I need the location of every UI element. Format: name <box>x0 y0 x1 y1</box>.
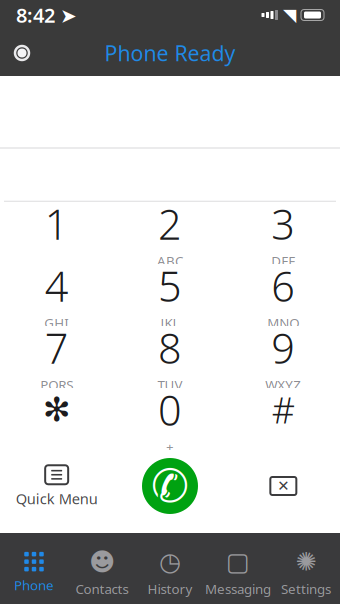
staticText: ✕ <box>277 478 289 494</box>
button[interactable]: ✺ <box>272 539 340 598</box>
staticText: 6 <box>271 258 295 313</box>
button[interactable]: Delete <box>227 450 340 522</box>
button[interactable]: 5 <box>113 264 227 326</box>
staticText: Settings <box>281 580 331 598</box>
button[interactable]: Signal status <box>4 38 40 68</box>
button[interactable]: 8 <box>113 326 227 388</box>
staticText: Messaging <box>205 580 271 598</box>
staticText: ▢ <box>226 547 250 576</box>
staticText: Phone Ready <box>104 39 235 67</box>
staticText: ✆ <box>151 460 189 512</box>
staticText: 9 <box>271 320 295 375</box>
staticText: PQRS <box>40 376 73 394</box>
staticText: ✻ <box>43 391 71 428</box>
staticText: Phone <box>14 576 54 594</box>
staticText: ◥ <box>283 5 296 25</box>
staticText: WXYZ <box>265 376 301 394</box>
staticText: ☻ <box>89 547 115 576</box>
button[interactable]: ◷ <box>136 539 204 598</box>
staticText: DEF <box>271 252 295 270</box>
button[interactable]: ☻ <box>68 539 136 598</box>
button[interactable]: 0 <box>113 388 227 450</box>
staticText: ABC <box>157 252 183 270</box>
staticText: JKL <box>160 314 179 332</box>
staticText: Quick Menu <box>16 489 98 508</box>
button[interactable]: Phone <box>0 543 68 594</box>
staticText: TUV <box>157 376 182 394</box>
button[interactable]: 2 <box>113 202 227 264</box>
staticText: 2 <box>158 196 182 251</box>
staticText: ✺ <box>295 547 316 576</box>
button[interactable]: ▢ <box>204 539 272 598</box>
button[interactable]: Quick Menu <box>0 450 113 522</box>
staticText: Contacts <box>75 580 128 598</box>
button[interactable]: 1 <box>0 202 113 264</box>
staticText: + <box>166 438 174 456</box>
staticText: 0 <box>158 382 182 437</box>
staticText: 1 <box>45 196 69 251</box>
button[interactable]: ✻ <box>0 388 113 450</box>
button[interactable]: 6 <box>227 264 340 326</box>
button[interactable]: 7 <box>0 326 113 388</box>
button[interactable]: 4 <box>0 264 113 326</box>
staticText: History <box>147 580 192 598</box>
button[interactable]: # <box>227 388 340 450</box>
staticText: # <box>272 386 295 433</box>
staticText: 8:42 ➤ <box>16 2 77 28</box>
staticText: 8 <box>158 320 182 375</box>
staticText: 3 <box>271 196 295 251</box>
staticText: GHI <box>44 314 69 332</box>
staticText: ◷ <box>159 547 181 576</box>
staticText: 4 <box>45 258 69 313</box>
staticText: 7 <box>45 320 69 375</box>
button[interactable]: 3 <box>227 202 340 264</box>
button[interactable]: Call <box>113 450 227 522</box>
staticText: 5 <box>158 258 182 313</box>
button[interactable]: 9 <box>227 326 340 388</box>
staticText: MNO <box>267 314 299 332</box>
